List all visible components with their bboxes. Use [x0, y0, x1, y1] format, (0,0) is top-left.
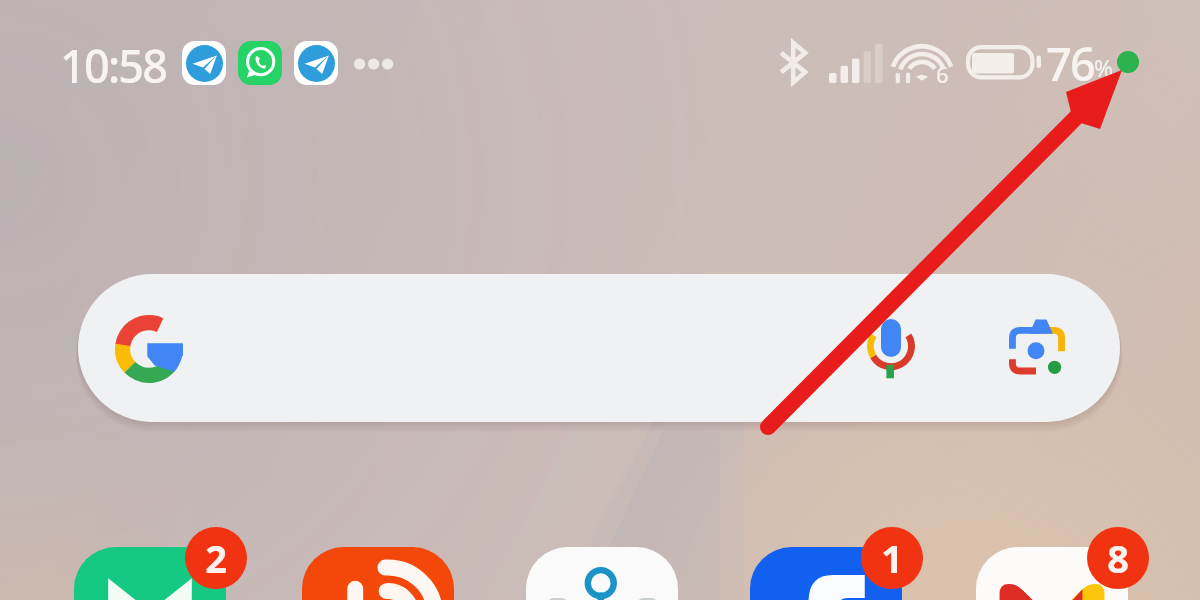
button[interactable]: Spark Mail	[74, 547, 226, 600]
other: Bluetooth	[774, 39, 814, 86]
other: Mobile signal	[829, 44, 883, 83]
staticText: 76	[1046, 33, 1094, 94]
button[interactable]: Maps	[526, 547, 678, 600]
button[interactable]: Search	[78, 274, 1120, 422]
button[interactable]: WhatsApp	[238, 41, 282, 85]
other: More notifications	[353, 56, 395, 72]
staticText: %	[1094, 52, 1114, 83]
staticText: 8	[1107, 532, 1129, 584]
button[interactable]: Telegram	[182, 41, 226, 85]
staticText: 10:58	[60, 35, 167, 96]
button[interactable]: Podcast	[302, 547, 454, 600]
button[interactable]: Google Search	[115, 315, 183, 383]
button[interactable]: Telegram	[294, 41, 338, 85]
staticText: 6	[936, 59, 949, 89]
staticText: 1	[881, 532, 903, 584]
other: Wi-Fi 6	[894, 36, 956, 92]
other: Annotation arrow pointing to privacy ind…	[0, 0, 1200, 600]
other: Privacy indicator	[1117, 51, 1139, 73]
button[interactable]: Voice search	[854, 312, 926, 384]
other: Battery 76 percent	[962, 42, 1042, 88]
button[interactable]: Messenger	[750, 547, 902, 600]
button[interactable]: Clock 10:58	[60, 35, 167, 96]
button[interactable]: Google Lens	[1000, 312, 1072, 384]
button[interactable]: Gmail	[976, 547, 1128, 600]
staticText: 2	[205, 532, 227, 584]
